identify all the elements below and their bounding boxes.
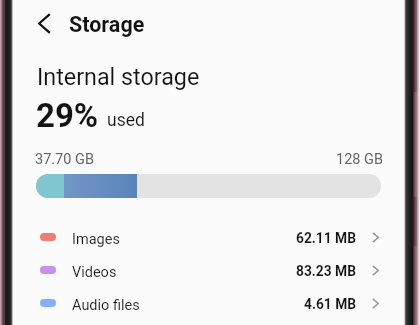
staticText: Videos bbox=[72, 264, 117, 281]
staticText: 4.61 MB bbox=[304, 296, 357, 312]
button[interactable]: Images bbox=[13, 220, 404, 253]
staticText: Internal storage bbox=[37, 63, 200, 90]
staticText: 37.70 GB bbox=[35, 151, 94, 168]
staticText: 62.11 MB bbox=[296, 230, 357, 246]
button[interactable]: Audio files bbox=[13, 286, 404, 319]
staticText: Audio files bbox=[72, 297, 140, 314]
staticText: 128 GB bbox=[336, 151, 383, 168]
staticText: used bbox=[107, 110, 145, 131]
button[interactable]: Videos bbox=[13, 253, 404, 286]
staticText: Storage bbox=[69, 12, 145, 37]
button[interactable]: Navigate up bbox=[22, 1, 66, 45]
staticText: Images bbox=[72, 231, 120, 248]
staticText: 29% bbox=[36, 96, 99, 135]
staticText: 83.23 MB bbox=[296, 263, 357, 279]
